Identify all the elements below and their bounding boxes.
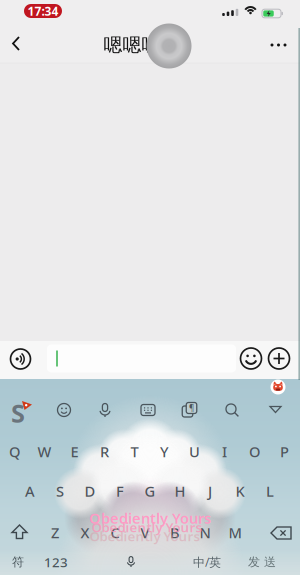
staticText: E: [70, 442, 78, 461]
button[interactable]: Numbers: [41, 553, 71, 571]
button[interactable]: Back: [0, 24, 32, 63]
staticText: C: [110, 523, 119, 542]
staticText: Y: [160, 442, 169, 461]
staticText: Q: [9, 442, 20, 461]
button[interactable]: G: [137, 479, 163, 503]
button[interactable]: Voice input: [98, 402, 112, 417]
staticText: L: [266, 481, 274, 501]
button[interactable]: Emoji: [57, 403, 71, 417]
staticText: W: [37, 442, 51, 461]
button[interactable]: Theme mascot: [270, 379, 285, 394]
staticText: J: [208, 481, 212, 501]
button[interactable]: Emoji: [240, 347, 262, 369]
staticText: Obediently Yours: [89, 527, 200, 545]
staticText: H: [174, 481, 185, 501]
staticText: T: [130, 442, 138, 461]
staticText: R: [100, 442, 109, 461]
button[interactable]: W: [31, 439, 57, 463]
button[interactable]: Search: [225, 403, 239, 417]
staticText: ¶: [189, 403, 194, 413]
button[interactable]: J: [197, 479, 223, 503]
button[interactable]: A: [17, 479, 43, 503]
staticText: 发 送: [248, 555, 276, 569]
button[interactable]: V: [132, 520, 158, 544]
button[interactable]: F: [107, 479, 133, 503]
staticText: 中/英: [193, 554, 221, 570]
button[interactable]: L: [257, 479, 283, 503]
button[interactable]: S: [47, 479, 73, 503]
staticText: S: [56, 481, 64, 501]
button[interactable]: Symbols: [6, 553, 30, 571]
button[interactable]: Screen recording 17:34: [24, 4, 62, 18]
button[interactable]: O: [241, 439, 267, 463]
staticText: I: [222, 442, 227, 461]
staticText: 嗯嗯嗯: [103, 33, 160, 56]
staticText: 123: [44, 553, 68, 571]
button[interactable]: K: [227, 479, 253, 503]
button[interactable]: M: [222, 520, 248, 544]
button[interactable]: U: [181, 439, 207, 463]
staticText: A: [25, 481, 35, 501]
button[interactable]: Hide toolbar: [270, 406, 282, 413]
staticText: S: [11, 396, 25, 430]
button[interactable]: Z: [42, 520, 68, 544]
button[interactable]: Chinese English toggle: [190, 553, 224, 571]
staticText: 符: [12, 555, 24, 569]
staticText: V: [140, 523, 149, 542]
button[interactable]: R: [91, 439, 117, 463]
button[interactable]: I: [211, 439, 237, 463]
button[interactable]: More functions: [268, 347, 290, 369]
button[interactable]: Send: [243, 553, 281, 571]
staticText: 17:34: [27, 3, 58, 19]
staticText: D: [84, 481, 95, 501]
staticText: O: [249, 442, 260, 461]
button[interactable]: Clipboard: [182, 402, 198, 418]
button[interactable]: More: [268, 37, 289, 53]
staticText: Z: [51, 523, 59, 542]
staticText: M: [228, 523, 241, 542]
button[interactable]: Space, voice input: [71, 553, 191, 571]
button[interactable]: AssistiveTouch: [146, 23, 191, 68]
button[interactable]: N: [192, 520, 218, 544]
staticText: U: [189, 442, 200, 461]
staticText: P: [280, 442, 289, 461]
button[interactable]: Q: [1, 439, 27, 463]
button[interactable]: D: [77, 479, 103, 503]
button[interactable]: Sogou: [8, 400, 32, 420]
button[interactable]: Shift: [12, 525, 28, 540]
staticText: Obediently Yours: [89, 508, 211, 528]
button[interactable]: Hold to talk: [10, 348, 31, 369]
button[interactable]: E: [61, 439, 87, 463]
button[interactable]: B: [162, 520, 188, 544]
button[interactable]: C: [102, 520, 128, 544]
button[interactable]: X: [72, 520, 98, 544]
staticText: Obediently Yours: [91, 518, 202, 536]
staticText: F: [116, 481, 124, 501]
button[interactable]: Keyboard layout: [141, 403, 155, 416]
staticText: N: [199, 523, 210, 542]
staticText: B: [170, 523, 180, 542]
staticText: X: [80, 523, 89, 542]
button[interactable]: T: [121, 439, 147, 463]
button[interactable]: P: [271, 439, 297, 463]
button[interactable]: Y: [151, 439, 177, 463]
button[interactable]: Message input: [47, 344, 236, 372]
button[interactable]: Delete: [271, 527, 291, 539]
button[interactable]: H: [167, 479, 193, 503]
staticText: G: [144, 481, 155, 501]
staticText: K: [235, 481, 244, 501]
